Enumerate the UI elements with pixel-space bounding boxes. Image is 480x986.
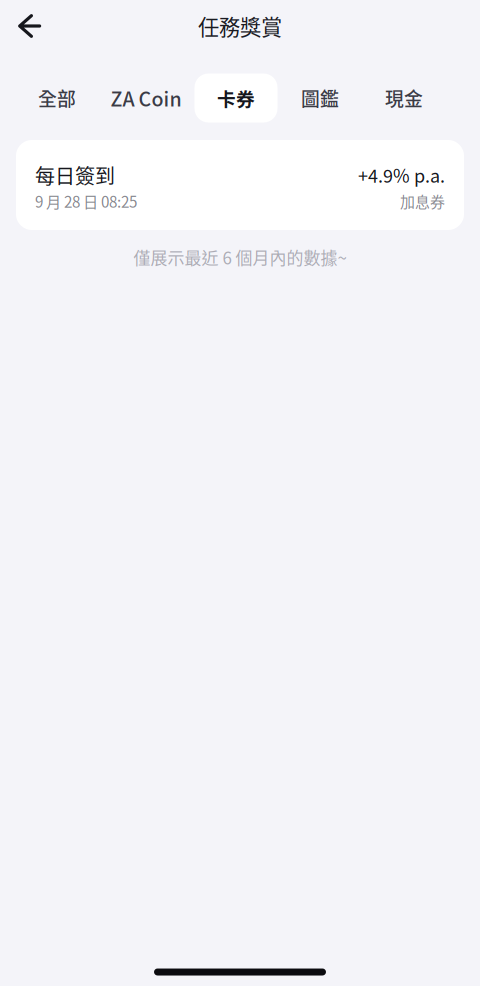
staticText: 每日簽到: [35, 160, 115, 189]
staticText: 卡券: [217, 84, 255, 111]
staticText: 加息券: [400, 190, 445, 212]
button[interactable]: ZA Coin: [103, 73, 189, 122]
staticText: ZA Coin: [110, 84, 181, 112]
staticText: 現金: [385, 84, 423, 112]
button[interactable]: 卡券: [194, 73, 277, 122]
button[interactable]: Back: [4, 2, 56, 50]
button[interactable]: 全部: [24, 73, 90, 122]
button[interactable]: 現金: [371, 73, 437, 122]
staticText: 9 月 28 日 08:25: [35, 190, 137, 212]
button[interactable]: 圖鑑: [287, 73, 353, 122]
button[interactable]: 每日簽到: [16, 140, 464, 230]
staticText: 圖鑑: [301, 84, 339, 112]
staticText: 全部: [38, 84, 76, 112]
staticText: 僅展示最近 6 個月內的數據~: [133, 245, 346, 269]
staticText: +4.9% p.a.: [358, 162, 445, 188]
staticText: 任務獎賞: [198, 11, 282, 41]
